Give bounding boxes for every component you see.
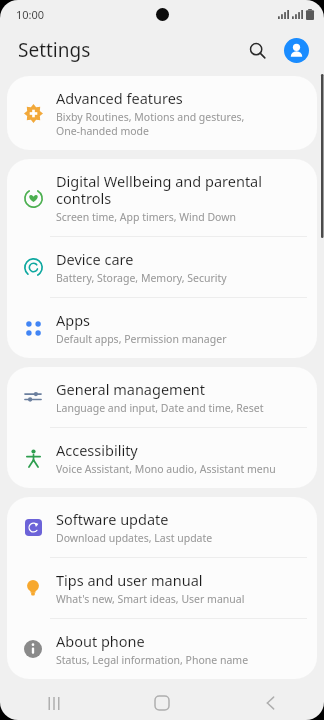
staticText: Digital Wellbeing and parental controls bbox=[56, 171, 262, 208]
button[interactable]: Apps bbox=[7, 298, 317, 358]
button[interactable]: Home bbox=[108, 686, 216, 720]
button[interactable]: Account bbox=[282, 36, 310, 64]
button[interactable]: Accessibility bbox=[7, 428, 317, 488]
staticText: Device care bbox=[56, 249, 134, 269]
staticText: Advanced features bbox=[56, 88, 183, 108]
staticText: Battery, Storage, Memory, Security bbox=[56, 271, 227, 285]
staticText: Language and input, Date and time, Reset bbox=[56, 401, 264, 415]
button[interactable]: Advanced features bbox=[7, 76, 317, 150]
button[interactable]: About phone bbox=[7, 619, 317, 679]
button[interactable]: Recents bbox=[0, 686, 108, 720]
staticText: Settings bbox=[18, 37, 91, 63]
staticText: Bixby Routines, Motions and gestures, On… bbox=[56, 110, 245, 138]
staticText: Apps bbox=[56, 310, 91, 330]
staticText: Status, Legal information, Phone name bbox=[56, 653, 249, 667]
button[interactable]: Tips and user manual bbox=[7, 558, 317, 618]
button[interactable]: Back bbox=[216, 686, 324, 720]
staticText: What's new, Smart ideas, User manual bbox=[56, 592, 245, 606]
staticText: Download updates, Last update bbox=[56, 531, 213, 545]
staticText: Screen time, App timers, Wind Down bbox=[56, 210, 236, 224]
staticText: Default apps, Permission manager bbox=[56, 332, 227, 346]
staticText: Voice Assistant, Mono audio, Assistant m… bbox=[56, 462, 276, 476]
button[interactable]: Software update bbox=[7, 497, 317, 557]
staticText: 10:00 bbox=[16, 7, 45, 22]
button[interactable]: Device care bbox=[7, 237, 317, 297]
staticText: General management bbox=[56, 379, 206, 399]
staticText: Accessibility bbox=[56, 440, 138, 460]
staticText: Software update bbox=[56, 509, 169, 529]
staticText: About phone bbox=[56, 631, 145, 651]
button[interactable]: Digital Wellbeing and parental controls bbox=[7, 159, 317, 236]
button[interactable]: Search bbox=[242, 35, 272, 65]
staticText: Tips and user manual bbox=[56, 570, 203, 590]
button[interactable]: General management bbox=[7, 367, 317, 427]
